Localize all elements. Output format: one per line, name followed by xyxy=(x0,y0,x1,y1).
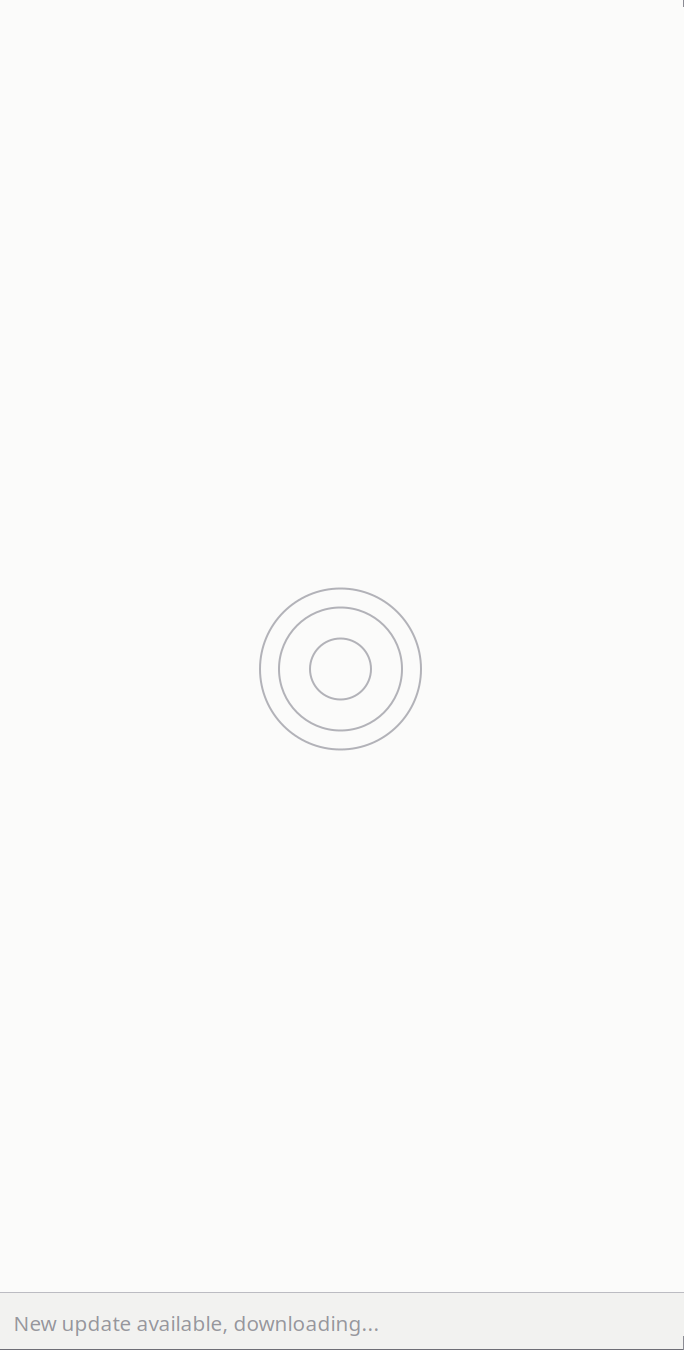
staticText: New update available, downloading... xyxy=(13,1309,379,1337)
button[interactable]: New update available, downloading... xyxy=(0,1293,684,1349)
